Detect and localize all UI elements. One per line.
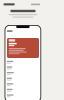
button[interactable]	[0, 0, 64, 100]
button[interactable]	[0, 0, 64, 100]
button[interactable]	[0, 0, 64, 100]
button[interactable]	[0, 0, 64, 100]
button[interactable]	[0, 0, 64, 100]
button[interactable]	[0, 0, 64, 100]
button[interactable]	[0, 0, 64, 100]
